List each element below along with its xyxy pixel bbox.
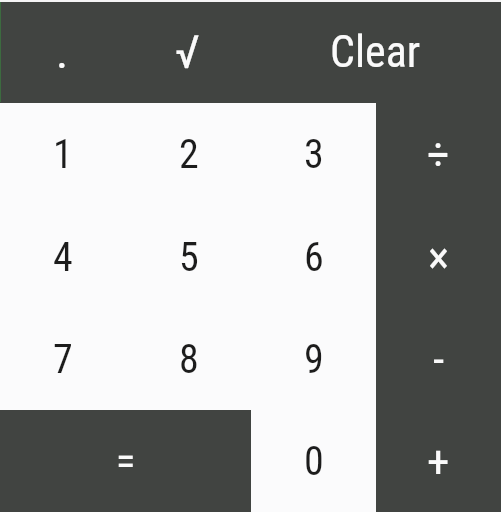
button[interactable]: - <box>376 308 501 410</box>
button[interactable]: + <box>376 410 501 512</box>
button[interactable]: . <box>0 0 125 103</box>
staticText: 4 <box>53 234 73 281</box>
staticText: 6 <box>304 234 324 281</box>
staticText: - <box>433 333 445 386</box>
button[interactable]: 1 <box>0 103 126 206</box>
staticText: + <box>427 435 450 488</box>
button[interactable]: = <box>0 410 251 512</box>
button[interactable]: 9 <box>251 308 376 410</box>
staticText: . <box>56 25 69 79</box>
staticText: 0 <box>304 438 324 485</box>
button[interactable]: 5 <box>126 206 251 308</box>
staticText: ÷ <box>427 128 450 181</box>
staticText: Clear <box>330 26 421 78</box>
button[interactable]: 4 <box>0 206 126 308</box>
staticText: 3 <box>304 131 324 178</box>
staticText: 7 <box>53 336 73 383</box>
staticText: 1 <box>53 131 73 178</box>
staticText: 8 <box>179 336 199 383</box>
button[interactable]: 2 <box>126 103 251 206</box>
button[interactable]: 7 <box>0 308 126 410</box>
staticText: 2 <box>179 131 199 178</box>
button[interactable]: ÷ <box>376 103 501 206</box>
button[interactable]: 0 <box>251 410 376 512</box>
button[interactable]: 3 <box>251 103 376 206</box>
staticText: = <box>116 438 136 485</box>
button[interactable]: 8 <box>126 308 251 410</box>
staticText: 9 <box>304 336 324 383</box>
staticText: √ <box>175 25 200 79</box>
staticText: × <box>428 231 450 284</box>
staticText: 5 <box>179 234 199 281</box>
button[interactable]: × <box>376 206 501 308</box>
button[interactable]: Clear <box>250 0 501 103</box>
button[interactable]: √ <box>125 0 250 103</box>
button[interactable]: 6 <box>251 206 376 308</box>
